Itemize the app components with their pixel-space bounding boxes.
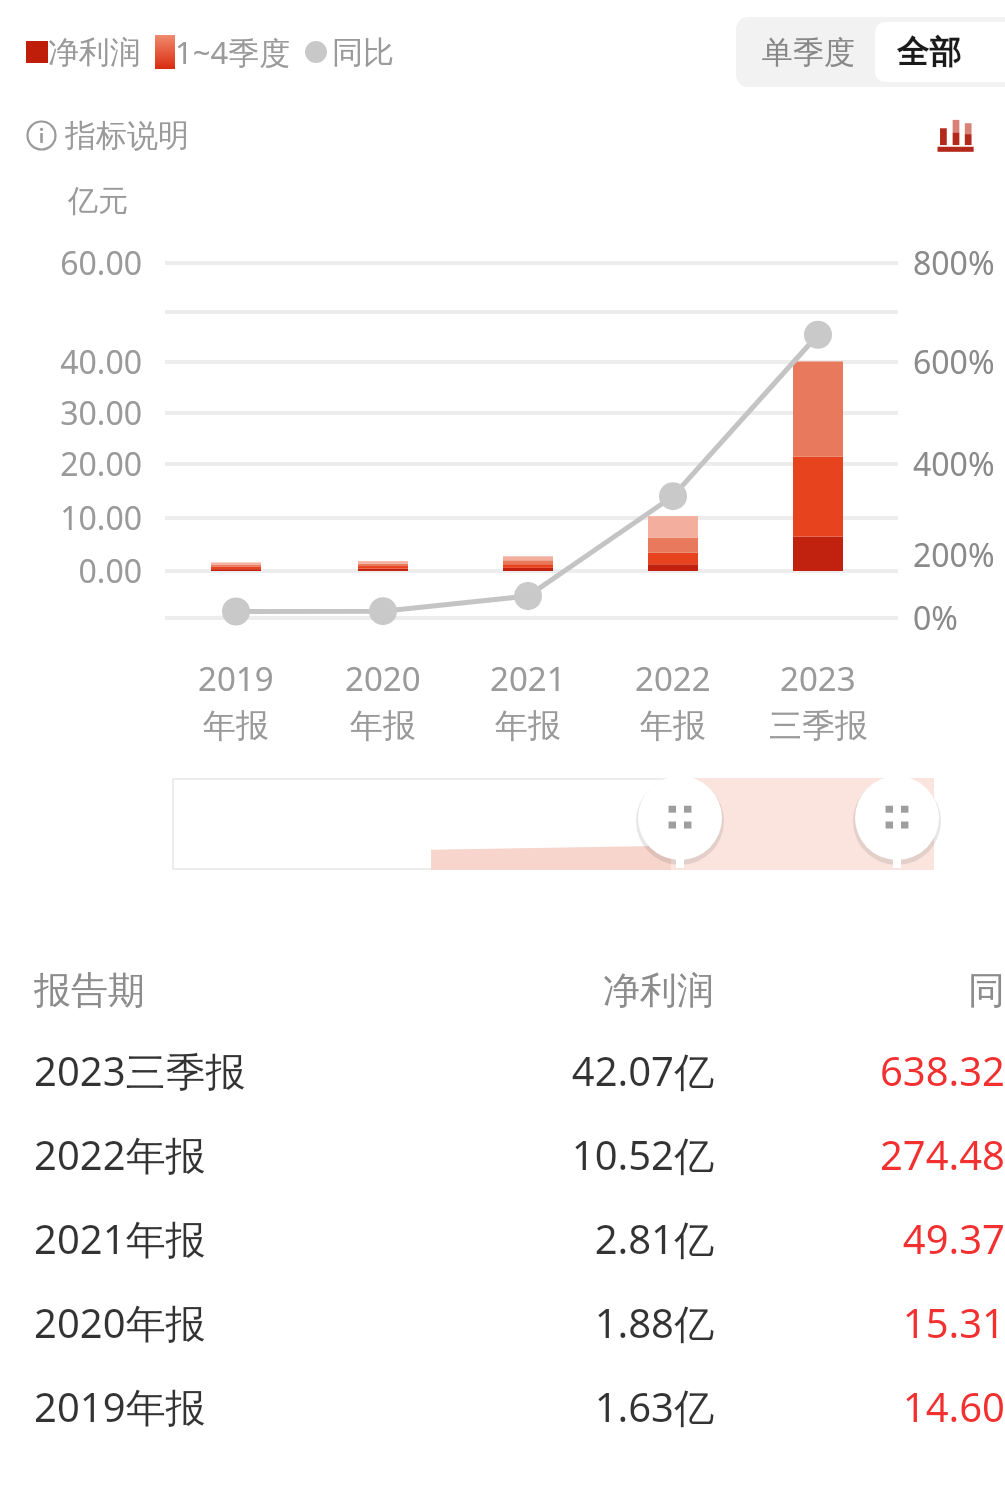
staticText: 60.00 (0, 241, 142, 285)
staticText: 600% (913, 340, 995, 384)
staticText: 年报 (495, 705, 561, 747)
staticText: 净利润 (374, 967, 714, 1014)
staticText: 274.48 (742, 1127, 1005, 1181)
staticText: 1.63亿 (374, 1379, 714, 1434)
staticText: 2020 (345, 656, 421, 701)
button[interactable]: Range end (853, 774, 941, 862)
staticText: 2023 (780, 656, 856, 701)
staticText: 30.00 (0, 391, 142, 435)
staticText: 42.07亿 (374, 1043, 714, 1098)
staticText: 报告期 (34, 967, 374, 1014)
staticText: 2020年报 (34, 1295, 374, 1350)
button[interactable]: Chart type (929, 108, 983, 162)
staticText: 指标说明 (65, 116, 189, 155)
staticText: 年报 (203, 705, 269, 747)
staticText: 三季报 (769, 705, 868, 747)
staticText: 49.37 (742, 1211, 1005, 1265)
staticText: 20.00 (0, 442, 142, 486)
button[interactable]: 单季度 (741, 22, 875, 82)
staticText: 2.81亿 (374, 1211, 714, 1266)
staticText: 2021 (490, 656, 566, 701)
staticText: 同 (742, 967, 1005, 1014)
staticText: 1.88亿 (374, 1295, 714, 1350)
staticText: 14.60 (742, 1379, 1005, 1433)
staticText: 2023三季报 (34, 1043, 374, 1098)
staticText: 2021年报 (34, 1211, 374, 1266)
button[interactable]: 2019年报 (0, 1364, 1005, 1448)
staticText: 400% (913, 442, 995, 486)
button[interactable]: Range start (636, 774, 724, 862)
staticText: 1~4季度 (175, 31, 291, 73)
staticText: 净利润 (48, 33, 141, 72)
staticText: 0.00 (0, 549, 142, 593)
button[interactable]: 全部 (875, 22, 1005, 82)
staticText: 638.32 (742, 1043, 1005, 1097)
staticText: 10.52亿 (374, 1127, 714, 1182)
staticText: 2019年报 (34, 1379, 374, 1434)
staticText: 同比 (332, 33, 394, 72)
button[interactable]: 指标说明 (26, 116, 189, 155)
button[interactable] (172, 778, 934, 870)
staticText: 15.31 (742, 1295, 1005, 1349)
button[interactable]: 2020年报 (0, 1280, 1005, 1364)
staticText: 单季度 (762, 33, 855, 72)
staticText: 2022年报 (34, 1127, 374, 1182)
staticText: 年报 (350, 705, 416, 747)
staticText: 200% (913, 533, 995, 577)
staticText: 800% (913, 241, 995, 285)
button[interactable]: 2021年报 (0, 1196, 1005, 1280)
button[interactable]: 2022年报 (0, 1112, 1005, 1196)
staticText: 2019 (198, 656, 274, 701)
staticText: 0% (913, 596, 958, 640)
staticText: 全部 (897, 32, 961, 72)
button[interactable]: 2023三季报 (0, 1028, 1005, 1112)
staticText: 亿元 (68, 182, 128, 220)
staticText: 年报 (640, 705, 706, 747)
staticText: 10.00 (0, 496, 142, 540)
staticText: 2022 (635, 656, 711, 701)
staticText: 40.00 (0, 340, 142, 384)
